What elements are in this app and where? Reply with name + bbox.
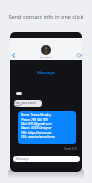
staticText: About: UI/UX Designer — [21, 126, 52, 130]
button[interactable]: Contact photo — [41, 45, 51, 55]
staticText: Name: Teresa Murphy — [21, 113, 51, 117]
button[interactable]: Name: Teresa Murphy — [18, 111, 76, 144]
staticText: Bill Anderson — [40, 56, 52, 59]
staticText: URL: https://teresa.me — [21, 131, 52, 135]
staticText: Message — [16, 157, 29, 161]
staticText: Phone: 789 546 789 — [21, 118, 48, 122]
button[interactable]: Can you send me? — [14, 100, 42, 107]
staticText: Read 9:41 — [10, 147, 77, 151]
staticText: Mail: 0012@gmail.com — [21, 122, 52, 126]
staticText: Message — [10, 70, 82, 76]
button[interactable]: Video call — [75, 51, 82, 59]
staticText: Send contact info in one click — [0, 13, 92, 20]
staticText: URL: www.behance/teres — [21, 135, 55, 139]
button[interactable]: Back — [10, 51, 17, 59]
button[interactable]: Message — [13, 156, 80, 162]
staticText: Can you send me? — [14, 100, 42, 107]
